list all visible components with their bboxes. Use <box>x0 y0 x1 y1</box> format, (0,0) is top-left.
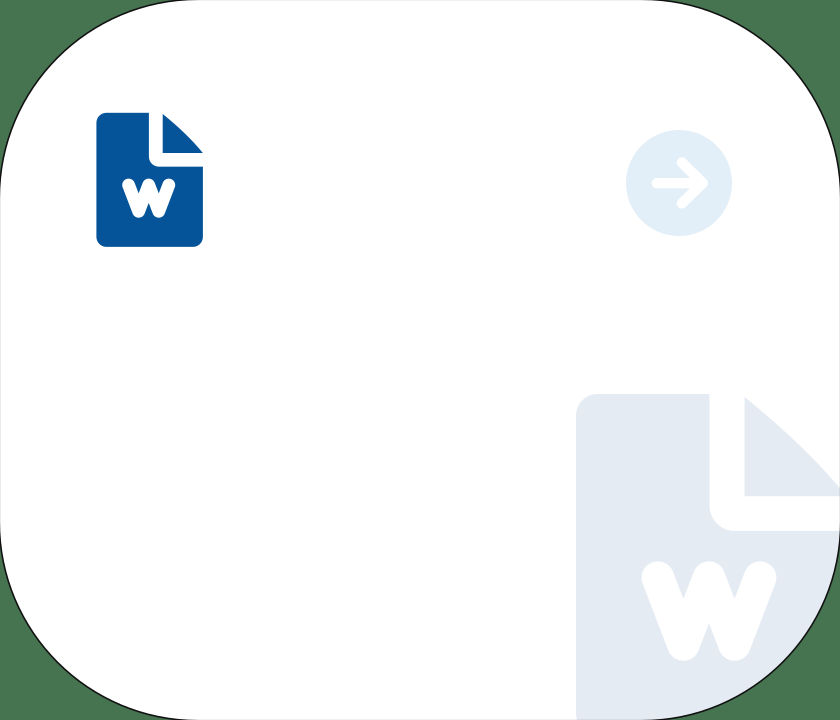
button[interactable]: Continue <box>626 130 732 236</box>
